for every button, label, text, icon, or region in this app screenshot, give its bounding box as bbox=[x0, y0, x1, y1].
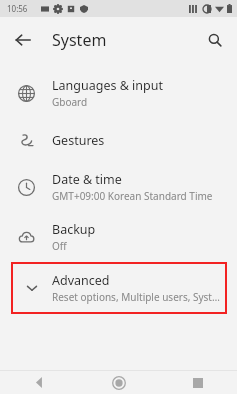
button[interactable]: Back bbox=[8, 25, 38, 55]
staticText: Gboard bbox=[52, 95, 88, 109]
staticText: Reset options, Multiple users, Syste.. bbox=[52, 290, 221, 304]
staticText: 10:56 bbox=[7, 3, 28, 14]
staticText: Gestures bbox=[52, 132, 105, 149]
button[interactable]: Recent apps bbox=[158, 371, 237, 394]
staticText: Backup bbox=[52, 221, 96, 238]
button[interactable]: Backup bbox=[0, 212, 237, 262]
button[interactable]: Languages & input bbox=[0, 68, 237, 118]
staticText: System bbox=[52, 29, 107, 51]
staticText: Off bbox=[52, 239, 67, 253]
staticText: Advanced bbox=[52, 272, 110, 289]
button[interactable]: Date & time bbox=[0, 162, 237, 212]
button[interactable]: Back bbox=[0, 371, 79, 394]
button[interactable]: Advanced bbox=[11, 262, 227, 314]
button[interactable]: Search bbox=[200, 25, 230, 55]
staticText: GMT+09:00 Korean Standard Time bbox=[52, 189, 213, 203]
staticText: Languages & input bbox=[52, 77, 163, 94]
button[interactable]: Home bbox=[79, 371, 158, 394]
button[interactable]: Gestures bbox=[0, 118, 237, 162]
staticText: Date & time bbox=[52, 171, 122, 188]
